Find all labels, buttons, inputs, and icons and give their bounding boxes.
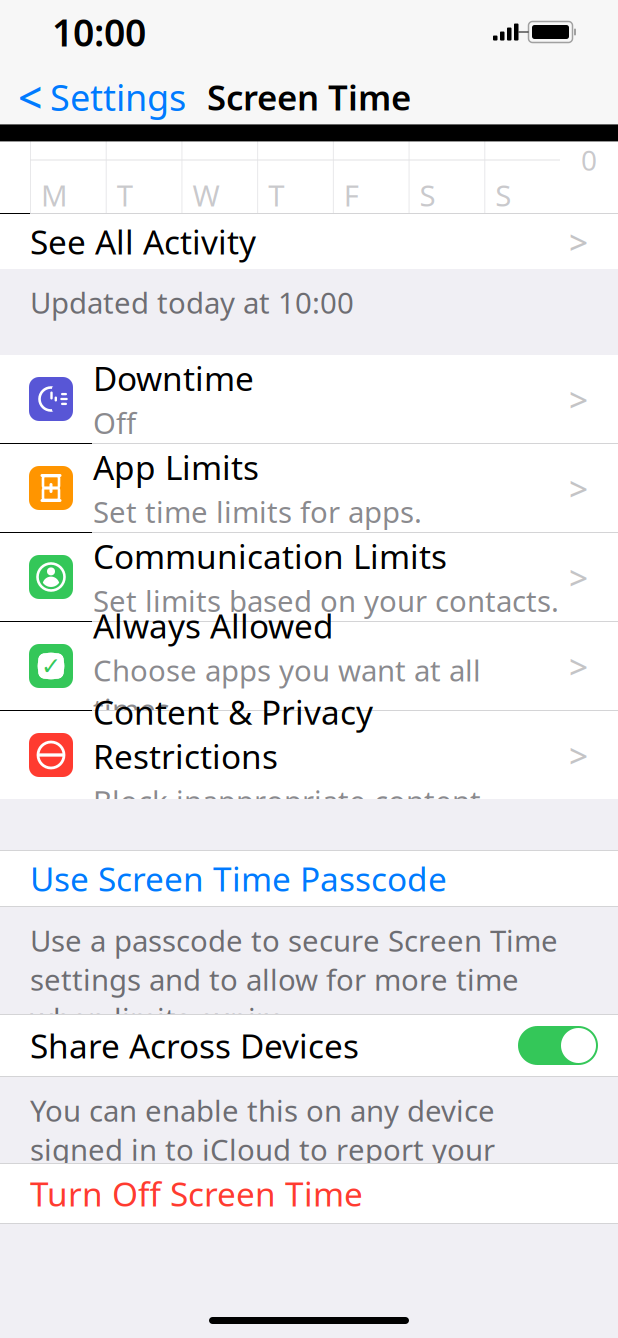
staticText: Turn Off Screen Time — [30, 1171, 363, 1216]
button[interactable]: Share Across Devices — [0, 1015, 618, 1076]
staticText: Always Allowed — [93, 603, 334, 648]
staticText: Choose apps you want at all times. — [93, 651, 481, 729]
staticText: Use a passcode to secure Screen Time set… — [30, 921, 558, 1038]
button[interactable]: < — [0, 69, 200, 125]
staticText: See All Activity — [30, 219, 256, 264]
staticText: 10:00 — [52, 7, 146, 57]
button[interactable]: Content & Privacy Restrictions — [0, 711, 618, 799]
button[interactable]: Turn Off Screen Time — [0, 1164, 618, 1223]
staticText: T — [117, 176, 133, 215]
staticText: F — [344, 176, 359, 215]
staticText: > — [569, 555, 588, 599]
staticText: Use Screen Time Passcode — [30, 856, 447, 901]
staticText: Updated today at 10:00 — [30, 283, 354, 322]
button[interactable]: ✓ — [0, 622, 618, 710]
staticText: < — [18, 69, 42, 125]
staticText: > — [569, 466, 588, 510]
button[interactable]: Use Screen Time Passcode — [0, 851, 618, 906]
staticText: App Limits — [93, 445, 259, 489]
button[interactable]: Downtime — [0, 355, 618, 443]
staticText: Set time limits for apps. — [93, 492, 422, 531]
button[interactable]: App Limits — [0, 444, 618, 532]
staticText: S — [420, 176, 436, 215]
staticText: W — [192, 176, 219, 215]
staticText: S — [495, 176, 511, 215]
staticText: T — [268, 176, 284, 215]
staticText: Downtime — [93, 356, 254, 400]
staticText: Share Across Devices — [30, 1023, 359, 1068]
staticText: ✓ — [41, 652, 61, 680]
staticText: > — [569, 219, 588, 264]
staticText: You can enable this on any device signed… — [30, 1091, 495, 1208]
staticText: > — [569, 377, 588, 421]
staticText: 0 — [581, 141, 597, 179]
button[interactable]: Communication Limits — [0, 533, 618, 621]
staticText: Content & Privacy Restrictions — [93, 690, 373, 778]
staticText: Settings — [50, 73, 186, 121]
staticText: > — [569, 733, 588, 777]
staticText: Screen Time — [207, 74, 411, 120]
button[interactable]: See All Activity — [0, 214, 618, 269]
staticText: M — [41, 176, 68, 215]
staticText: Off — [93, 403, 136, 442]
staticText: Set limits based on your contacts. — [93, 581, 559, 620]
staticText: Block inappropriate content. — [93, 781, 489, 820]
staticText: > — [569, 644, 588, 688]
staticText: Communication Limits — [93, 534, 447, 578]
